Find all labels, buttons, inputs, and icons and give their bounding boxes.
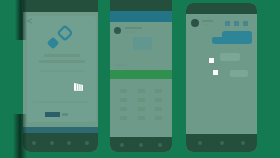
button[interactable]: Tab bbox=[192, 134, 208, 152]
button[interactable]: Tab bbox=[62, 133, 76, 152]
button[interactable]: Tab bbox=[134, 137, 148, 152]
button[interactable]: Tab bbox=[235, 134, 251, 152]
button[interactable] bbox=[23, 127, 98, 133]
button[interactable]: Tab bbox=[27, 133, 41, 152]
button[interactable]: Tab bbox=[45, 133, 59, 152]
button[interactable]: Back bbox=[24, 16, 34, 26]
button[interactable]: Tab bbox=[80, 133, 94, 152]
button[interactable]: Tab bbox=[214, 134, 230, 152]
button[interactable] bbox=[114, 25, 172, 35]
button[interactable]: Tab bbox=[153, 137, 167, 152]
button[interactable]: Tab bbox=[115, 137, 129, 152]
